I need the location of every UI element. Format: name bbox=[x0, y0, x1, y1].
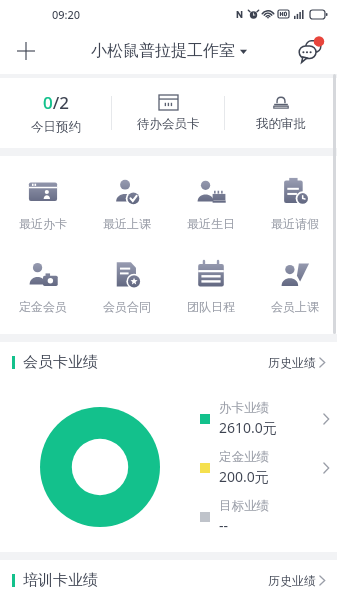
staticText: 团队日程 bbox=[187, 299, 235, 314]
staticText: 最近请假 bbox=[271, 216, 319, 231]
staticText: 最近上课 bbox=[103, 216, 151, 231]
button[interactable]: 0/2 bbox=[0, 78, 111, 148]
button[interactable]: 办卡业绩 bbox=[200, 400, 329, 437]
staticText: 定金业绩 bbox=[219, 449, 269, 465]
staticText: 今日预约 bbox=[31, 119, 81, 135]
staticText: 历史业绩 bbox=[268, 573, 316, 588]
staticText: 定金会员 bbox=[19, 299, 67, 314]
staticText: 最近生日 bbox=[187, 216, 235, 231]
button[interactable]: 最近生日 bbox=[169, 170, 253, 237]
staticText: 我的审批 bbox=[256, 116, 306, 132]
button[interactable]: 会员合同 bbox=[85, 253, 169, 320]
staticText: 目标业绩 bbox=[219, 498, 269, 514]
button[interactable]: 历史业绩 bbox=[268, 355, 325, 370]
button[interactable]: 最近上课 bbox=[85, 170, 169, 237]
staticText: 培训卡业绩 bbox=[23, 571, 98, 590]
staticText: 会员卡业绩 bbox=[23, 353, 98, 372]
button[interactable]: 历史业绩 bbox=[268, 573, 325, 588]
button[interactable]: 定金业绩 bbox=[200, 449, 329, 486]
button[interactable]: 我的审批 bbox=[225, 78, 337, 148]
staticText: 09:20 bbox=[52, 7, 81, 22]
button[interactable]: 目标业绩 bbox=[200, 498, 329, 535]
button[interactable]: 最近请假 bbox=[253, 170, 337, 237]
staticText: 历史业绩 bbox=[268, 355, 316, 370]
staticText: 会员上课 bbox=[271, 299, 319, 314]
button[interactable]: 待办会员卡 bbox=[112, 78, 224, 148]
button[interactable]: Messages bbox=[291, 32, 329, 70]
staticText: 2610.0元 bbox=[219, 418, 277, 437]
staticText: 会员合同 bbox=[103, 299, 151, 314]
staticText: -- bbox=[219, 516, 229, 535]
staticText: 200.0元 bbox=[219, 467, 269, 486]
button[interactable]: 会员上课 bbox=[253, 253, 337, 320]
button[interactable]: 小松鼠普拉提工作室 bbox=[91, 41, 247, 61]
button[interactable]: 定金会员 bbox=[0, 253, 85, 320]
button[interactable]: 最近办卡 bbox=[0, 170, 85, 237]
button[interactable]: 团队日程 bbox=[169, 253, 253, 320]
staticText: 0/2 bbox=[43, 91, 69, 114]
button[interactable]: Add bbox=[8, 33, 44, 69]
staticText: 最近办卡 bbox=[19, 216, 67, 231]
staticText: 小松鼠普拉提工作室 bbox=[91, 41, 235, 61]
staticText: 办卡业绩 bbox=[219, 400, 269, 416]
staticText: 待办会员卡 bbox=[137, 116, 200, 132]
